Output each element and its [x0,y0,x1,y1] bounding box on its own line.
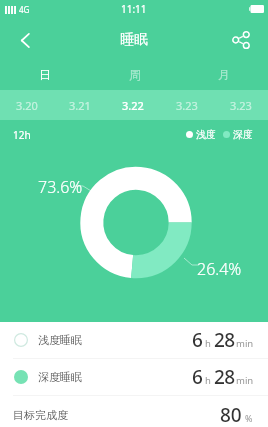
staticText: 3.21 [69,98,91,113]
staticText: 80 [220,402,242,427]
staticText: 4G [19,4,30,15]
staticText: 日 [39,67,51,82]
staticText: 周 [129,67,141,82]
staticText: 6 [192,327,203,353]
staticText: 11:11 [121,2,147,16]
staticText: 浅度 [196,128,216,141]
staticText: 3.23 [176,98,198,113]
staticText: 28 [214,327,235,353]
button[interactable]: 目标完成度 [0,396,268,427]
staticText: 3.20 [16,98,38,113]
staticText: % [245,412,253,424]
staticText: 3.22 [122,98,144,113]
staticText: 月 [218,67,230,82]
button[interactable]: 浅度睡眠 [0,322,268,358]
button[interactable]: 周 [90,58,179,90]
button[interactable]: 深度睡眠 [0,359,268,395]
staticText: 睡眠 [120,31,148,49]
staticText: min [236,337,254,350]
button[interactable]: Share [224,18,268,58]
staticText: 3.23 [230,98,252,113]
staticText: 深度 [233,128,253,141]
button[interactable]: 日 [0,58,90,90]
staticText: 浅度睡眠 [38,333,82,347]
button[interactable]: 3.22 [106,90,160,120]
staticText: h [205,374,211,387]
button[interactable]: 3.21 [53,90,106,120]
staticText: 6 [192,364,203,390]
staticText: h [205,337,211,350]
staticText: 28 [214,364,235,390]
staticText: min [236,374,254,387]
button[interactable]: 3.20 [0,90,53,120]
button[interactable]: 3.23 [160,90,214,120]
button[interactable]: 月 [179,58,268,90]
staticText: 目标完成度 [13,408,68,422]
staticText: 73.6% [38,176,83,198]
staticText: 12h [13,128,31,142]
button[interactable]: 3.23 [214,90,268,120]
button[interactable]: Back [0,18,44,58]
staticText: 深度睡眠 [38,370,82,384]
staticText: 26.4% [197,258,242,280]
